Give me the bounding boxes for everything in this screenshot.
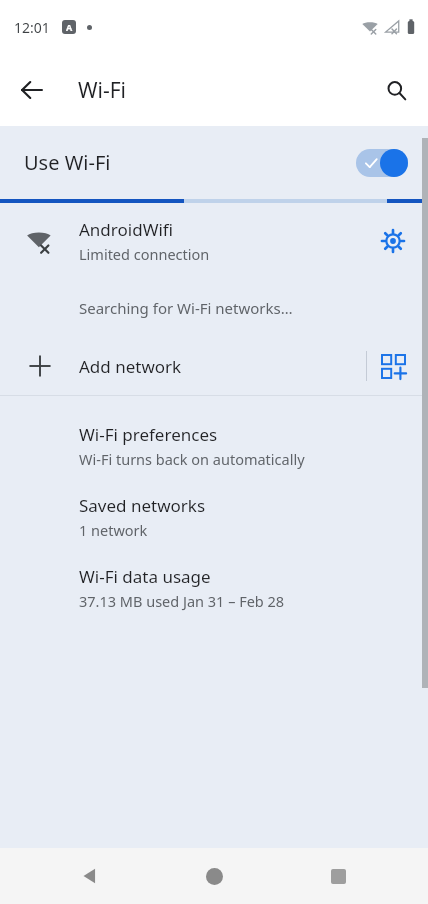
button[interactable]: Network settings [367, 215, 419, 267]
button[interactable]: Recent apps [312, 850, 364, 902]
button[interactable]: Saved networks [0, 481, 428, 552]
staticText: Add network [79, 355, 366, 378]
button[interactable]: Scan QR code [367, 340, 419, 392]
staticText: Saved networks [79, 494, 206, 517]
staticText: Wi-Fi turns back on automatically [79, 449, 305, 469]
button[interactable]: Back [64, 850, 116, 902]
staticText: AndroidWifi [79, 218, 174, 241]
staticText: Wi-Fi preferences [79, 423, 218, 446]
staticText: Wi-Fi [78, 76, 127, 105]
staticText: 12:01 [14, 18, 50, 37]
button[interactable]: Search [374, 68, 418, 112]
button[interactable]: Wi-Fi data usage [0, 552, 428, 623]
button[interactable]: Back [10, 68, 54, 112]
staticText: A [66, 21, 73, 33]
button[interactable]: Add network [0, 337, 428, 395]
button[interactable]: Use Wi-Fi [0, 126, 428, 199]
button[interactable]: Wi-Fi preferences [0, 410, 428, 481]
button[interactable]: AndroidWifi [0, 203, 428, 278]
staticText: 37.13 MB used Jan 31 – Feb 28 [79, 591, 285, 611]
staticText: Limited connection [79, 244, 210, 264]
staticText: Use Wi-Fi [24, 149, 356, 176]
staticText: 1 network [79, 520, 148, 540]
staticText: Searching for Wi-Fi networks… [79, 298, 293, 318]
staticText: Wi-Fi data usage [79, 565, 211, 588]
button[interactable]: Home [188, 850, 240, 902]
